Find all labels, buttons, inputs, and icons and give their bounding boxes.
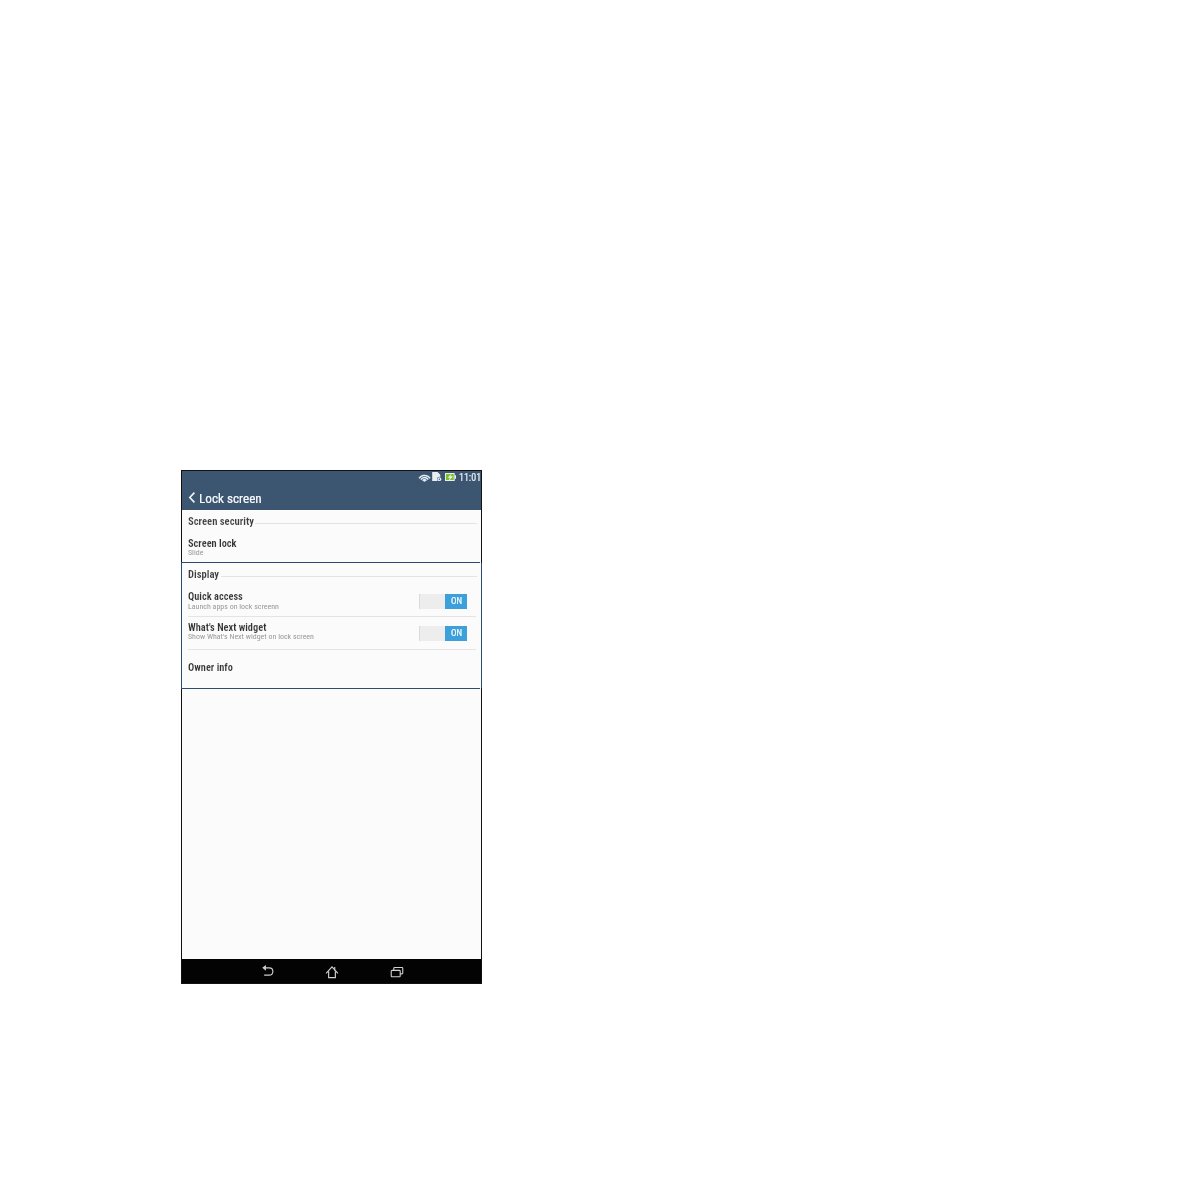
staticText: Slide <box>188 548 204 557</box>
button[interactable]: Home <box>310 959 354 983</box>
staticText: Screen security <box>188 515 254 527</box>
staticText: Show What's Next widget on lock screen <box>188 632 314 641</box>
staticText: Display <box>188 568 220 580</box>
staticText: Screen lock <box>188 537 237 549</box>
staticText: ON <box>451 628 462 639</box>
button[interactable]: Back <box>246 959 290 983</box>
button[interactable]: Owner info <box>182 650 481 687</box>
staticText: Owner info <box>188 661 233 673</box>
button[interactable]: Recent apps <box>375 959 419 983</box>
button[interactable]: Toggle, on <box>419 594 467 609</box>
button[interactable]: What's Next widget <box>182 617 481 649</box>
staticText: Lock screen <box>199 491 262 506</box>
button[interactable]: Quick access <box>182 583 481 616</box>
staticText: Launch apps on lock screenn <box>188 602 279 611</box>
staticText: 11:01 <box>459 472 482 484</box>
button[interactable]: Navigate up <box>183 486 200 508</box>
staticText: ON <box>451 596 462 607</box>
button[interactable]: Toggle, on <box>419 626 467 641</box>
staticText: What's Next widget <box>188 621 267 633</box>
staticText: Quick access <box>188 590 243 602</box>
button[interactable]: Screen lock <box>182 530 481 562</box>
